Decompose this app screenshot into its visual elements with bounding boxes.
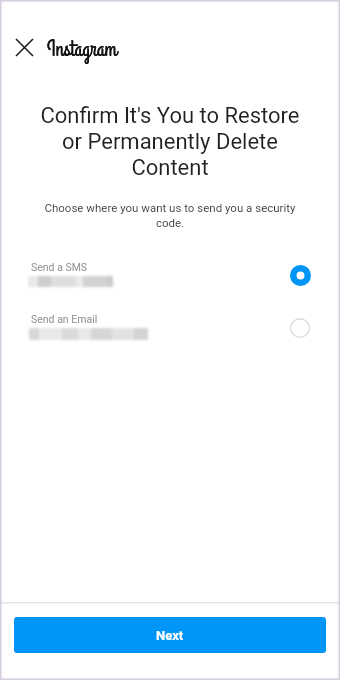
staticText: Confirm It's You to Restore xyxy=(0,103,340,129)
staticText: or Permanently Delete xyxy=(0,129,340,155)
staticText: Instagram xyxy=(47,34,117,64)
staticText: Instagram xyxy=(47,34,117,64)
button[interactable] xyxy=(0,305,340,361)
staticText: Send an Email xyxy=(31,313,98,325)
button[interactable]: Next xyxy=(14,617,326,653)
staticText: Send a SMS xyxy=(31,261,88,273)
staticText: Next xyxy=(156,628,184,643)
staticText: Instagram xyxy=(47,34,117,64)
button[interactable]: Close xyxy=(8,31,40,63)
staticText: Choose where you want us to send you a s… xyxy=(0,201,340,230)
staticText: Content xyxy=(0,155,340,181)
button[interactable] xyxy=(0,253,340,309)
